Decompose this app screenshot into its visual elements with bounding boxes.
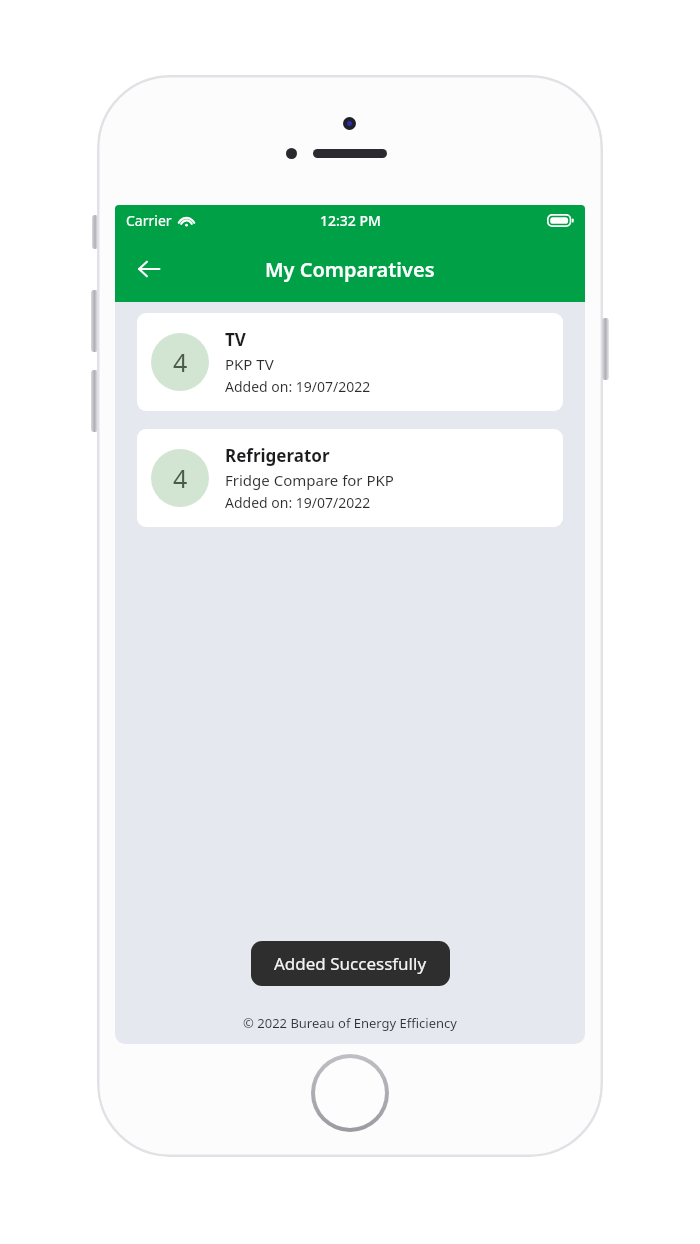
staticText: Fridge Compare for PKP xyxy=(225,470,394,490)
staticText: 4 xyxy=(173,461,188,495)
staticText: Refrigerator xyxy=(225,444,330,467)
staticText: 4 xyxy=(173,345,188,379)
button[interactable]: Added Successfully xyxy=(251,941,450,986)
button[interactable]: 4 xyxy=(137,429,563,527)
staticText: My Comparatives xyxy=(265,256,435,283)
staticText: Added on: 19/07/2022 xyxy=(225,377,371,396)
staticText: TV xyxy=(225,328,246,351)
staticText: PKP TV xyxy=(225,354,274,374)
staticText: 12:32 PM xyxy=(320,211,381,230)
button[interactable]: 4 xyxy=(137,313,563,411)
staticText: Added on: 19/07/2022 xyxy=(225,493,371,512)
button[interactable]: Back xyxy=(125,245,173,293)
staticText: © 2022 Bureau of Energy Efficiency xyxy=(243,1014,457,1032)
staticText: Added Successfully xyxy=(274,952,427,975)
staticText: Carrier xyxy=(126,211,172,230)
